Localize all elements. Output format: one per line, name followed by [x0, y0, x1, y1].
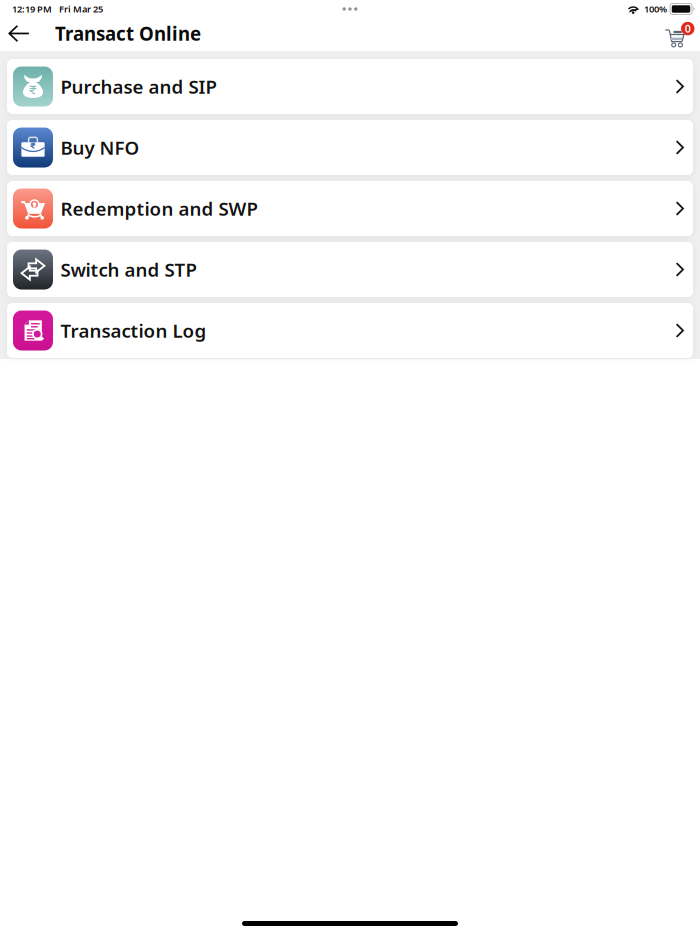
button[interactable]: Switch and STP: [7, 242, 693, 297]
button[interactable]: Buy NFO: [7, 120, 693, 175]
staticText: Redemption and SWP: [60, 196, 257, 221]
button[interactable]: Back: [0, 16, 38, 51]
staticText: Transaction Log: [60, 318, 206, 343]
staticText: 12:19 PM: [12, 3, 52, 15]
staticText: Buy NFO: [60, 135, 139, 160]
staticText: Purchase and SIP: [60, 74, 216, 99]
staticText: Switch and STP: [60, 257, 196, 282]
staticText: Transact Online: [55, 21, 201, 46]
button[interactable]: Redemption and SWP: [7, 181, 693, 236]
staticText: Fri Mar 25: [59, 3, 103, 15]
staticText: 100%: [644, 3, 667, 15]
staticText: 0: [685, 21, 691, 36]
button[interactable]: Transaction Log: [7, 303, 693, 358]
button[interactable]: Purchase and SIP: [7, 59, 693, 114]
button[interactable]: Cart, 0 items: [665, 18, 699, 49]
